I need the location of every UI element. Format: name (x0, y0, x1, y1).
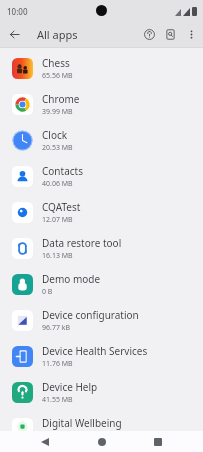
staticText: CQATest (42, 200, 81, 214)
staticText: Demo mode (42, 272, 101, 286)
button[interactable]: Device configuration (0, 302, 203, 338)
button[interactable]: Help (139, 24, 160, 45)
button[interactable]: Contacts (0, 158, 203, 194)
staticText: 12.07 MB (42, 215, 73, 225)
staticText: Device Help (42, 380, 98, 394)
button[interactable]: More options (181, 24, 202, 45)
button[interactable]: Recent apps (147, 431, 169, 452)
staticText: 96.77 kB (42, 323, 70, 333)
staticText: 0 B (42, 287, 53, 297)
button[interactable]: Device Help (0, 374, 203, 410)
staticText: 21.28 MB (42, 431, 73, 441)
staticText: 65.56 MB (42, 71, 73, 81)
button[interactable]: Digital Wellbeing (0, 410, 203, 446)
button[interactable]: Demo mode (0, 266, 203, 302)
button[interactable]: Chrome (0, 86, 203, 122)
button[interactable]: Back (34, 431, 56, 452)
staticText: Clock (42, 128, 68, 142)
button[interactable]: Clock (0, 122, 203, 158)
staticText: Digital Wellbeing (42, 416, 122, 430)
staticText: 20.53 MB (42, 143, 73, 153)
button[interactable]: Data restore tool (0, 230, 203, 266)
staticText: Data restore tool (42, 236, 122, 250)
staticText: 41.55 MB (42, 395, 73, 405)
staticText: Device Health Services (42, 344, 148, 358)
staticText: 39.99 MB (42, 107, 73, 117)
staticText: 40.06 MB (42, 179, 73, 189)
button[interactable]: Chess (0, 50, 203, 86)
button[interactable]: Device Health Services (0, 338, 203, 374)
button[interactable]: CQATest (0, 194, 203, 230)
staticText: 16.13 MB (42, 251, 73, 261)
staticText: Device configuration (42, 308, 139, 322)
staticText: Chess (42, 56, 70, 70)
staticText: 11.76 MB (42, 359, 73, 369)
button[interactable]: Search apps (160, 24, 181, 45)
staticText: All apps (37, 27, 78, 42)
button[interactable]: Home (91, 431, 113, 452)
staticText: 10:00 (7, 6, 28, 17)
staticText: Chrome (42, 92, 80, 106)
button[interactable]: Back (4, 24, 25, 45)
staticText: Contacts (42, 164, 83, 178)
